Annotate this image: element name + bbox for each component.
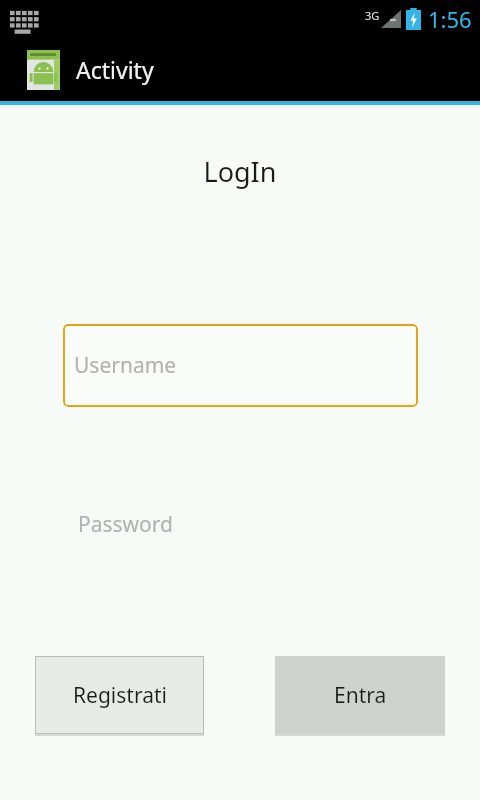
button[interactable]: Registrati — [35, 656, 204, 734]
button[interactable]: Entra — [275, 656, 445, 734]
staticText: Username — [74, 351, 177, 380]
staticText: Entra — [334, 681, 387, 710]
staticText: Password — [78, 510, 173, 539]
button[interactable]: Password — [63, 483, 418, 566]
button[interactable]: Username — [63, 324, 418, 407]
staticText: 1:56 — [428, 4, 472, 34]
staticText: Activity — [76, 54, 154, 85]
staticText: Registrati — [73, 681, 167, 710]
staticText: 3G — [365, 8, 380, 23]
staticText: LogIn — [0, 153, 480, 190]
